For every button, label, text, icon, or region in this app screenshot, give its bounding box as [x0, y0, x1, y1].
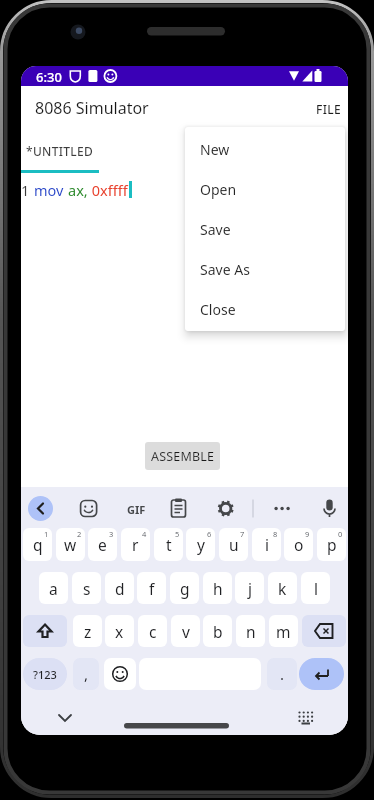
staticText: d [115, 578, 125, 599]
button[interactable]: FILE [309, 94, 348, 124]
staticText: mov [34, 180, 68, 200]
staticText: f [149, 578, 155, 599]
button[interactable]: ?123 [23, 658, 67, 690]
button[interactable]: w [56, 528, 85, 561]
staticText: New [200, 140, 230, 159]
button[interactable]: e [88, 528, 117, 561]
staticText: n [246, 621, 256, 642]
staticText: t [166, 534, 172, 555]
staticText: i [265, 534, 269, 555]
button[interactable] [78, 498, 99, 519]
staticText: h [213, 578, 223, 599]
button[interactable]: l [301, 572, 330, 604]
staticText: x [115, 621, 124, 642]
button[interactable] [271, 498, 292, 519]
button[interactable]: m [269, 615, 298, 647]
button[interactable]: . [267, 658, 297, 690]
staticText: a [49, 578, 58, 599]
staticText: Close [200, 300, 236, 319]
button[interactable]: p [317, 528, 346, 561]
staticText: w [64, 534, 77, 555]
button[interactable] [215, 498, 236, 519]
staticText: Save As [200, 260, 250, 279]
button[interactable]: o [284, 528, 313, 561]
staticText: ASSEMBLE [151, 448, 215, 465]
button[interactable]: r [121, 528, 150, 561]
button[interactable]: d [105, 572, 134, 604]
staticText: g [180, 578, 190, 599]
staticText: 1 [21, 180, 34, 200]
staticText: GIF [127, 502, 146, 517]
staticText: m [276, 621, 291, 642]
staticText: FILE [316, 101, 341, 117]
button[interactable] [302, 615, 346, 647]
staticText: u [229, 534, 239, 555]
button[interactable]: *UNTITLED [21, 128, 99, 173]
staticText: y [197, 534, 205, 555]
button[interactable] [299, 658, 344, 690]
button[interactable]: y [186, 528, 215, 561]
button[interactable] [168, 498, 189, 519]
button[interactable] [293, 707, 317, 729]
button[interactable] [28, 496, 53, 521]
button[interactable]: Open [185, 169, 345, 209]
staticText: c [149, 621, 157, 642]
button[interactable]: g [170, 572, 199, 604]
button[interactable]: a [39, 572, 68, 604]
button[interactable]: s [72, 572, 101, 604]
button[interactable]: b [203, 615, 232, 647]
button[interactable]: j [235, 572, 264, 604]
staticText: 0xffff [88, 180, 128, 200]
button[interactable]: , [73, 658, 99, 690]
staticText: 4 [142, 529, 147, 539]
button[interactable]: Save As [185, 249, 345, 289]
button[interactable]: Save [185, 209, 345, 249]
button[interactable]: t [154, 528, 183, 561]
button[interactable]: f [137, 572, 166, 604]
staticText: , [84, 664, 89, 684]
button[interactable]: x [105, 615, 134, 647]
button[interactable]: k [268, 572, 297, 604]
staticText: Save [200, 220, 231, 239]
staticText: z [84, 621, 92, 642]
staticText: 7 [240, 529, 245, 539]
staticText: q [33, 534, 43, 555]
staticText: 8086 Simulator [35, 97, 149, 119]
button[interactable]: ASSEMBLE [145, 442, 220, 470]
staticText: 1 [44, 529, 49, 539]
staticText: j [248, 578, 252, 599]
staticText: Open [200, 180, 237, 199]
button[interactable] [53, 707, 77, 729]
button[interactable]: i [252, 528, 281, 561]
button[interactable]: Close [185, 289, 345, 329]
staticText: . [280, 664, 285, 684]
button[interactable]: q [23, 528, 52, 561]
staticText: p [327, 534, 337, 555]
staticText: b [213, 621, 223, 642]
staticText: v [182, 621, 190, 642]
button[interactable]: h [203, 572, 232, 604]
staticText: o [294, 534, 304, 555]
staticText: 6:30 [36, 68, 62, 86]
button[interactable] [104, 658, 136, 690]
staticText: r [132, 534, 139, 555]
button[interactable]: z [73, 615, 102, 647]
staticText: 6 [207, 529, 212, 539]
staticText: 5 [175, 529, 180, 539]
staticText: s [83, 578, 91, 599]
button[interactable]: n [236, 615, 265, 647]
staticText: ?123 [33, 667, 57, 682]
button[interactable]: u [219, 528, 248, 561]
button[interactable] [319, 498, 340, 519]
button[interactable]: v [171, 615, 200, 647]
staticText: 8 [273, 529, 278, 539]
button[interactable]: New [185, 129, 345, 169]
button[interactable] [23, 615, 67, 647]
button[interactable] [121, 718, 232, 732]
staticText: 9 [305, 529, 310, 539]
button[interactable] [125, 498, 153, 519]
staticText: *UNTITLED [26, 143, 94, 159]
button[interactable]: c [138, 615, 167, 647]
staticText: 0 [338, 529, 343, 539]
